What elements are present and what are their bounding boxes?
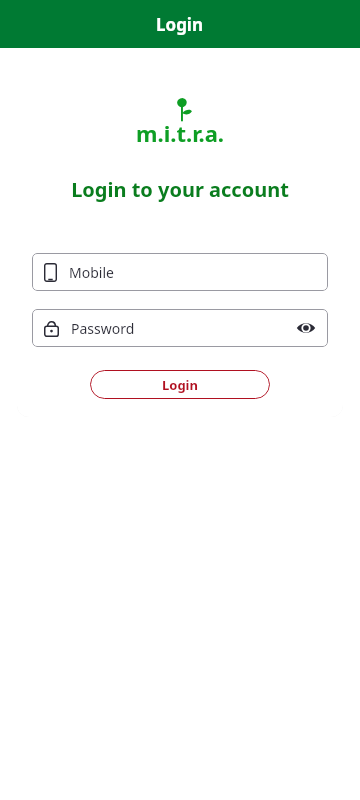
button[interactable]: Show password	[294, 316, 318, 340]
staticText: Password	[71, 319, 294, 338]
staticText: Mobile	[69, 263, 114, 282]
staticText: Login to your account	[0, 176, 360, 203]
button[interactable]: Password	[32, 309, 328, 347]
staticText: Login	[156, 13, 204, 36]
staticText: Login	[162, 376, 198, 394]
staticText: m.i.t.r.a.	[136, 118, 224, 148]
button[interactable]: Login	[90, 370, 270, 399]
button[interactable]: Mobile	[32, 253, 328, 291]
